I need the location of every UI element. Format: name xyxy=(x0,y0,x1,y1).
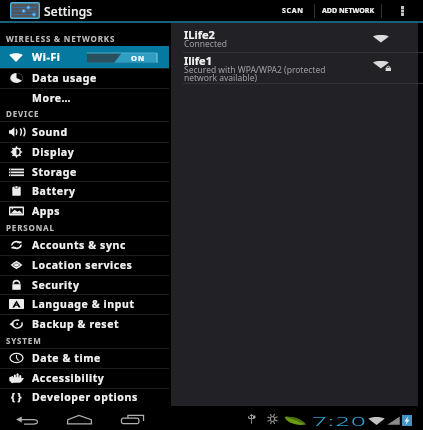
staticText: Settings xyxy=(44,3,93,19)
button[interactable]: SCAN xyxy=(274,0,312,23)
staticText: More… xyxy=(32,91,72,105)
button[interactable]: Language & input xyxy=(0,294,169,314)
button[interactable]: Date & time xyxy=(0,348,169,367)
staticText: Secured with WPA/WPA2 (protected network… xyxy=(184,64,326,83)
staticText: Accounts & sync xyxy=(32,238,126,252)
button[interactable]: Data usage xyxy=(0,68,169,88)
button[interactable]: Security xyxy=(0,275,169,295)
staticText: Storage xyxy=(32,165,77,179)
staticText: Apps xyxy=(32,204,61,218)
button[interactable]: Wi-Fi xyxy=(0,46,169,68)
button[interactable]: Sound xyxy=(0,121,169,142)
button[interactable]: Home xyxy=(58,406,101,430)
staticText: Date & time xyxy=(32,351,101,365)
button[interactable]: { } xyxy=(0,388,169,406)
button[interactable]: More options xyxy=(390,0,414,23)
button[interactable]: ILife2 xyxy=(171,23,418,52)
button[interactable]: ADD NETWORK xyxy=(317,0,379,23)
button[interactable]: Recent apps xyxy=(112,406,153,430)
staticText: Data usage xyxy=(32,71,97,85)
staticText: Security xyxy=(32,278,80,292)
staticText: Accessibility xyxy=(32,371,105,385)
staticText: Language & input xyxy=(32,297,135,311)
staticText: Display xyxy=(32,145,75,159)
staticText: Wi-Fi xyxy=(32,50,61,64)
staticText: Battery xyxy=(32,184,76,198)
staticText: ILife2 xyxy=(184,27,215,42)
staticText: Ilife1 xyxy=(184,53,212,68)
staticText: Developer options xyxy=(32,390,138,404)
staticText: Sound xyxy=(32,125,68,139)
button[interactable]: Apps xyxy=(0,201,169,221)
staticText: WIRELESS & NETWORKS xyxy=(6,33,116,44)
staticText: SCAN xyxy=(282,6,304,16)
button[interactable]: Battery xyxy=(0,181,169,201)
button[interactable]: More… xyxy=(0,88,169,108)
staticText: { } xyxy=(11,390,22,404)
staticText: ON xyxy=(131,53,146,63)
staticText: DEVICE xyxy=(6,108,40,119)
staticText: Connected xyxy=(184,38,227,50)
button[interactable]: Accessibility xyxy=(0,368,169,388)
button[interactable]: Backup & reset xyxy=(0,314,169,334)
staticText: Location services xyxy=(32,258,133,272)
button[interactable]: Location services xyxy=(0,255,169,275)
staticText: Backup & reset xyxy=(32,317,120,331)
button[interactable]: Accounts & sync xyxy=(0,235,169,255)
staticText: SYSTEM xyxy=(6,335,42,346)
button[interactable]: Display xyxy=(0,142,169,162)
button[interactable]: Back xyxy=(7,406,47,430)
staticText: 7:20 xyxy=(312,412,369,428)
button[interactable]: Storage xyxy=(0,162,169,182)
button[interactable]: Ilife1 xyxy=(171,52,418,83)
staticText: ADD NETWORK xyxy=(322,6,375,16)
staticText: PERSONAL xyxy=(6,222,55,233)
